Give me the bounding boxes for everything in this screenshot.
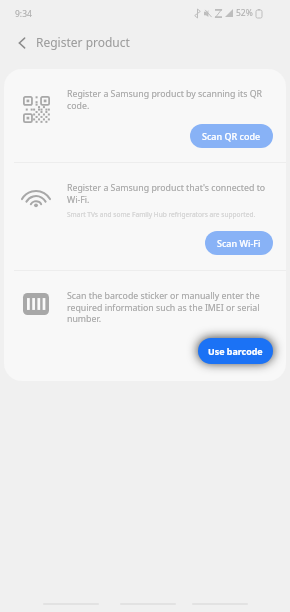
button[interactable]: Navigation bbox=[120, 597, 176, 611]
button[interactable]: Scan QR code bbox=[190, 124, 273, 148]
staticText: Scan the barcode sticker or manually ent… bbox=[67, 290, 269, 324]
staticText: Use barcode bbox=[208, 345, 263, 357]
button[interactable]: Use barcode bbox=[198, 338, 273, 364]
staticText: Register product bbox=[36, 34, 130, 50]
button[interactable]: Scan Wi-Fi bbox=[205, 231, 273, 255]
button[interactable]: Navigation bbox=[192, 597, 248, 611]
staticText: Register a Samsung product that's connec… bbox=[67, 182, 269, 205]
button[interactable]: Back bbox=[10, 31, 34, 55]
staticText: Smart TVs and some Family Hub refrigerat… bbox=[67, 210, 256, 219]
staticText: 52% bbox=[236, 7, 253, 19]
staticText: Scan QR code bbox=[202, 130, 261, 142]
button[interactable]: Navigation bbox=[43, 597, 99, 611]
staticText: 9:34 bbox=[15, 8, 32, 20]
staticText: Scan Wi-Fi bbox=[217, 237, 261, 249]
staticText: Register a Samsung product by scanning i… bbox=[67, 88, 269, 111]
